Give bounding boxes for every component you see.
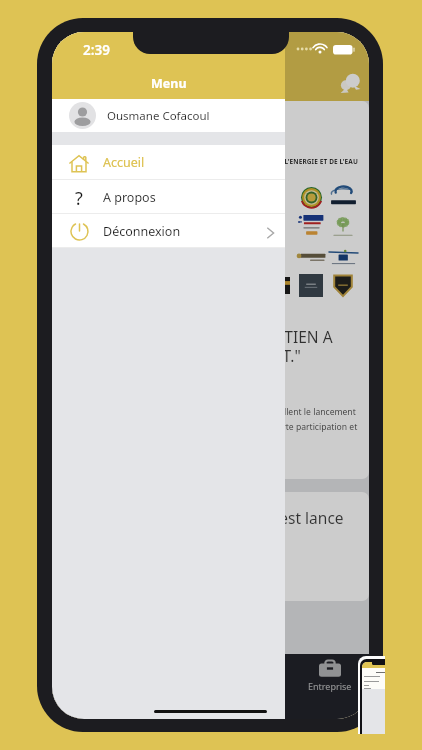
- staticText: Déconnexion: [103, 223, 181, 240]
- staticText: LE NOUVEAU PROGRAMME est lance: [52, 507, 369, 528]
- button[interactable]: Messages: [336, 68, 364, 96]
- staticText: Menu: [151, 75, 187, 92]
- staticText: Ousmane Cofacoul: [107, 108, 210, 124]
- button[interactable]: ?: [52, 180, 285, 214]
- staticText: Entreprise: [308, 680, 352, 692]
- button[interactable]: Accueil: [52, 145, 285, 180]
- button[interactable]: LE NOUVEAU PROGRAMME est lance: [52, 492, 369, 601]
- staticText: A propos: [103, 189, 156, 206]
- button[interactable]: REPUBLIQUE DU MALI UN PEUPLE UN BUT UNE …: [52, 101, 369, 479]
- staticText: Nous avons l'immense plaisir de vous ann…: [52, 406, 369, 432]
- button[interactable]: Actualités: [132, 654, 211, 719]
- staticText: Accueil: [103, 154, 145, 171]
- button[interactable]: Déconnexion: [52, 214, 285, 248]
- button[interactable]: Services: [211, 654, 290, 719]
- staticText: REPUBLIQUE DU MALI UN PEUPLE UN BUT UNE …: [52, 157, 369, 166]
- button[interactable]: Accueil: [52, 654, 132, 719]
- button[interactable]: Entreprise: [290, 654, 369, 719]
- staticText: 2:39: [83, 41, 110, 59]
- button[interactable]: Ousmane Cofacoul: [52, 99, 285, 132]
- staticText: ?: [75, 186, 83, 208]
- staticText: DE LA CAMPAGNE DE "SOUTIEN A L'ENTREPRIS…: [52, 326, 369, 366]
